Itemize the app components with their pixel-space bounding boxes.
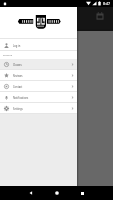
button[interactable]: Settings (0, 103, 77, 114)
button[interactable]: Contact (0, 81, 77, 92)
staticText: Log in (13, 44, 21, 47)
button[interactable]: Home (51, 187, 63, 199)
staticText: Classes (13, 63, 22, 66)
staticText: 8:47 (103, 1, 111, 6)
button[interactable]: Recents (76, 187, 88, 199)
button[interactable]: Classes (0, 59, 77, 70)
staticText: Booking (3, 54, 13, 57)
button[interactable]: Calendar (96, 12, 104, 20)
button[interactable]: Reviews (0, 70, 77, 81)
button[interactable]: Log in (0, 39, 77, 51)
staticText: Notifications (13, 96, 29, 99)
button[interactable]: Notifications (0, 92, 77, 103)
staticText: Reviews (13, 74, 23, 77)
staticText: Settings (13, 107, 23, 110)
button[interactable]: Back (25, 187, 37, 199)
staticText: Contact (13, 85, 23, 88)
